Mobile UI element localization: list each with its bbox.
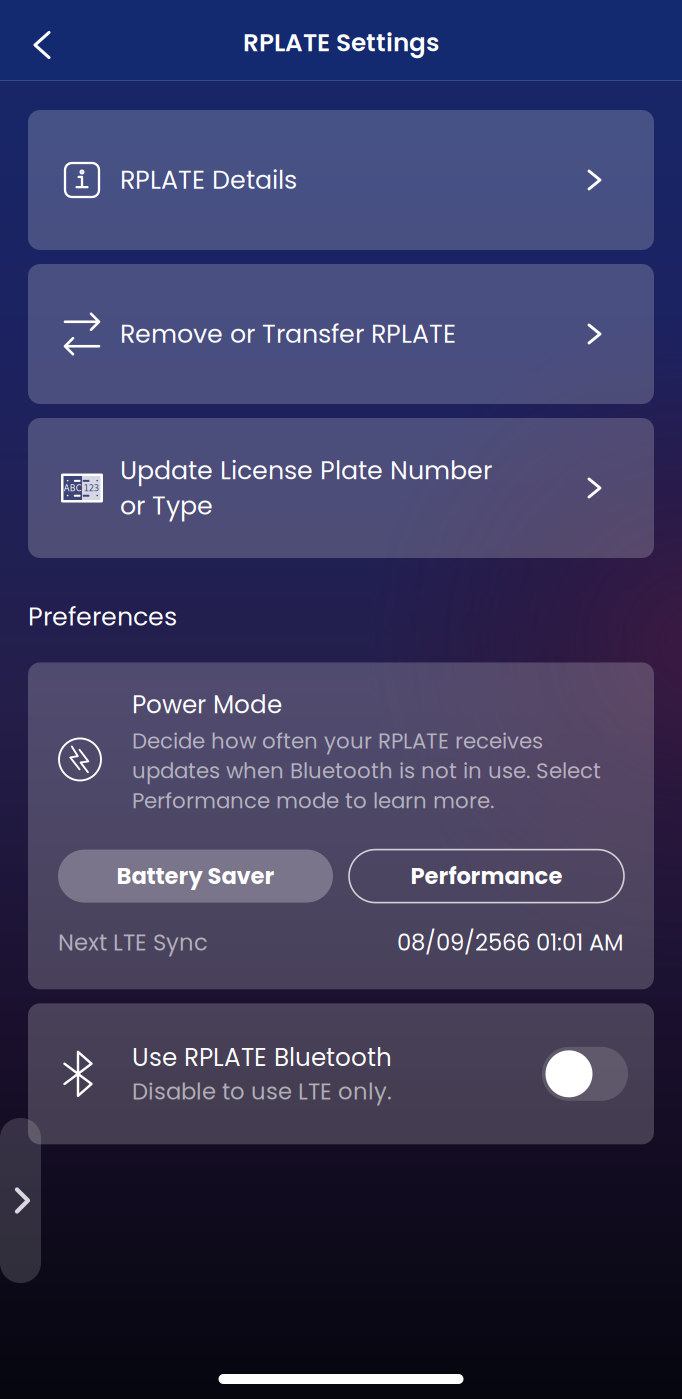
button[interactable]: RPLATE Details: [28, 110, 654, 250]
staticText: Performance: [410, 860, 562, 892]
staticText: 08/09/2566 01:01 AM: [397, 927, 624, 958]
staticText: Battery Saver: [116, 860, 274, 892]
button[interactable]: Use RPLATE Bluetooth: [542, 1047, 628, 1101]
staticText: Preferences: [28, 599, 177, 634]
button[interactable]: Performance: [349, 850, 624, 903]
staticText: ABC: [64, 483, 82, 493]
button[interactable]: ABC: [28, 418, 654, 558]
staticText: Power Mode: [132, 687, 282, 722]
staticText: Next LTE Sync: [58, 927, 208, 958]
button[interactable]: Remove or Transfer RPLATE: [28, 264, 654, 404]
button[interactable]: Battery Saver: [58, 850, 333, 903]
staticText: RPLATE Details: [120, 162, 297, 198]
button[interactable]: Back: [16, 6, 68, 75]
staticText: Decide how often your RPLATE receives up…: [132, 726, 601, 816]
staticText: Remove or Transfer RPLATE: [120, 316, 456, 352]
staticText: Disable to use LTE only.: [132, 1076, 392, 1107]
button[interactable]: Open drawer: [0, 1118, 41, 1283]
staticText: RPLATE Settings: [243, 25, 439, 60]
staticText: 123: [84, 483, 99, 493]
staticText: Update License Plate Number or Type: [120, 452, 492, 523]
staticText: Use RPLATE Bluetooth: [132, 1040, 392, 1075]
